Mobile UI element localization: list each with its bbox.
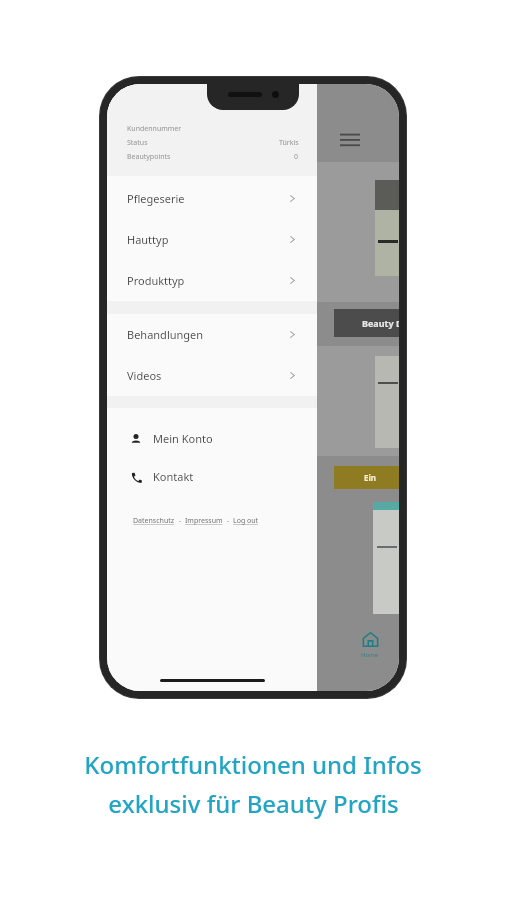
staticText: Kontakt	[153, 469, 194, 484]
staticText: Ein	[364, 472, 377, 483]
button[interactable]: Videos	[107, 355, 317, 396]
button[interactable]: Produkttyp	[107, 260, 317, 301]
staticText: Produkttyp	[127, 273, 185, 288]
staticText: Impressum	[185, 516, 223, 526]
button[interactable]: Pflegeserie	[107, 178, 317, 219]
button[interactable]: Kontakt	[107, 464, 317, 488]
staticText: Hauttyp	[127, 232, 169, 247]
staticText: Türkis	[279, 138, 299, 148]
staticText: Kundennummer	[127, 124, 182, 134]
staticText: Log out	[233, 516, 259, 526]
staticText: Komfortfunktionen und Infos	[84, 748, 422, 781]
staticText: Home	[361, 651, 379, 659]
button[interactable]: Datenschutz	[133, 516, 175, 526]
button[interactable]: Beauty D	[334, 309, 399, 337]
staticText: Mein Konto	[153, 431, 213, 446]
staticText: Beautypoints	[127, 152, 171, 162]
staticText: Status	[127, 138, 148, 148]
staticText: 0	[294, 152, 299, 162]
staticText: Datenschutz	[133, 516, 175, 526]
button[interactable]: Log out	[233, 516, 259, 526]
button[interactable]: Hauttyp	[107, 219, 317, 260]
button[interactable]: Impressum	[185, 516, 223, 526]
staticText: Pflegeserie	[127, 191, 185, 206]
button[interactable]: Ein	[334, 466, 399, 489]
staticText: exklusiv für Beauty Profis	[108, 787, 399, 820]
staticText: -	[223, 516, 233, 526]
staticText: Beauty D	[362, 317, 399, 329]
staticText: -	[175, 516, 185, 526]
button[interactable]: Mein Konto	[107, 426, 317, 450]
button[interactable]: Behandlungen	[107, 314, 317, 355]
button[interactable]: Home	[347, 627, 393, 663]
staticText: Videos	[127, 368, 162, 383]
staticText: Behandlungen	[127, 327, 204, 342]
button[interactable]: Menu	[337, 126, 363, 152]
